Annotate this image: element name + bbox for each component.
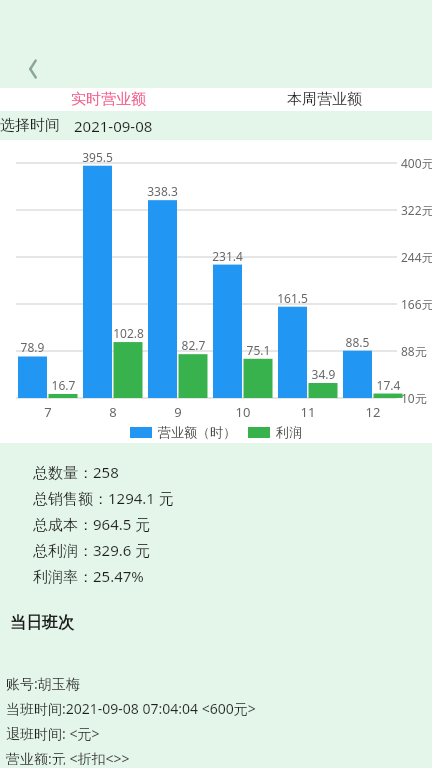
staticText: 总成本：964.5 元 [33, 514, 151, 534]
staticText: 12 [343, 403, 403, 421]
staticText: 实时营业额 [71, 90, 146, 109]
staticText: 选择时间 [0, 116, 60, 135]
staticText: 17.4 [368, 377, 409, 393]
staticText: 营业额（时） [158, 424, 236, 440]
staticText: 退班时间: <元> [6, 724, 100, 743]
staticText: 78.9 [12, 339, 53, 355]
staticText: 营业额:元 <折扣<>> [6, 749, 130, 765]
staticText: 8 [83, 403, 143, 421]
button[interactable]: 实时营业额 [0, 88, 216, 111]
staticText: 395.5 [77, 149, 118, 165]
staticText: 34.9 [303, 366, 344, 382]
staticText: 7 [18, 403, 78, 421]
staticText: 10元 [401, 390, 427, 406]
staticText: 88.5 [337, 334, 378, 350]
staticText: 总利润：329.6 元 [33, 540, 151, 560]
staticText: 161.5 [272, 290, 313, 306]
staticText: 9 [148, 403, 208, 421]
staticText: 244元 [401, 249, 432, 265]
staticText: 总数量：258 [33, 462, 119, 482]
staticText: 当日班次 [10, 613, 74, 633]
staticText: 16.7 [43, 377, 84, 393]
button[interactable]: 选择时间 [0, 111, 432, 140]
staticText: 当班时间:2021-09-08 07:04:04 <600元> [6, 699, 256, 718]
staticText: 102.8 [108, 325, 149, 341]
button[interactable]: Back [13, 49, 53, 89]
staticText: 2021-09-08 [74, 116, 153, 136]
staticText: 338.3 [142, 183, 183, 199]
staticText: 11 [278, 403, 338, 421]
staticText: 231.4 [207, 248, 248, 264]
staticText: 总销售额：1294.1 元 [33, 488, 174, 508]
staticText: 利润 [276, 424, 302, 440]
staticText: 账号:胡玉梅 [6, 674, 80, 693]
staticText: 10 [213, 403, 273, 421]
staticText: 322元 [401, 202, 432, 218]
staticText: 75.1 [238, 342, 279, 358]
staticText: 利润率：25.47% [33, 566, 144, 586]
button[interactable]: 本周营业额 [216, 88, 432, 111]
staticText: 88元 [401, 343, 427, 359]
staticText: 166元 [401, 296, 432, 312]
staticText: 本周营业额 [287, 90, 362, 109]
staticText: 400元 [401, 155, 432, 171]
staticText: 82.7 [173, 337, 214, 353]
